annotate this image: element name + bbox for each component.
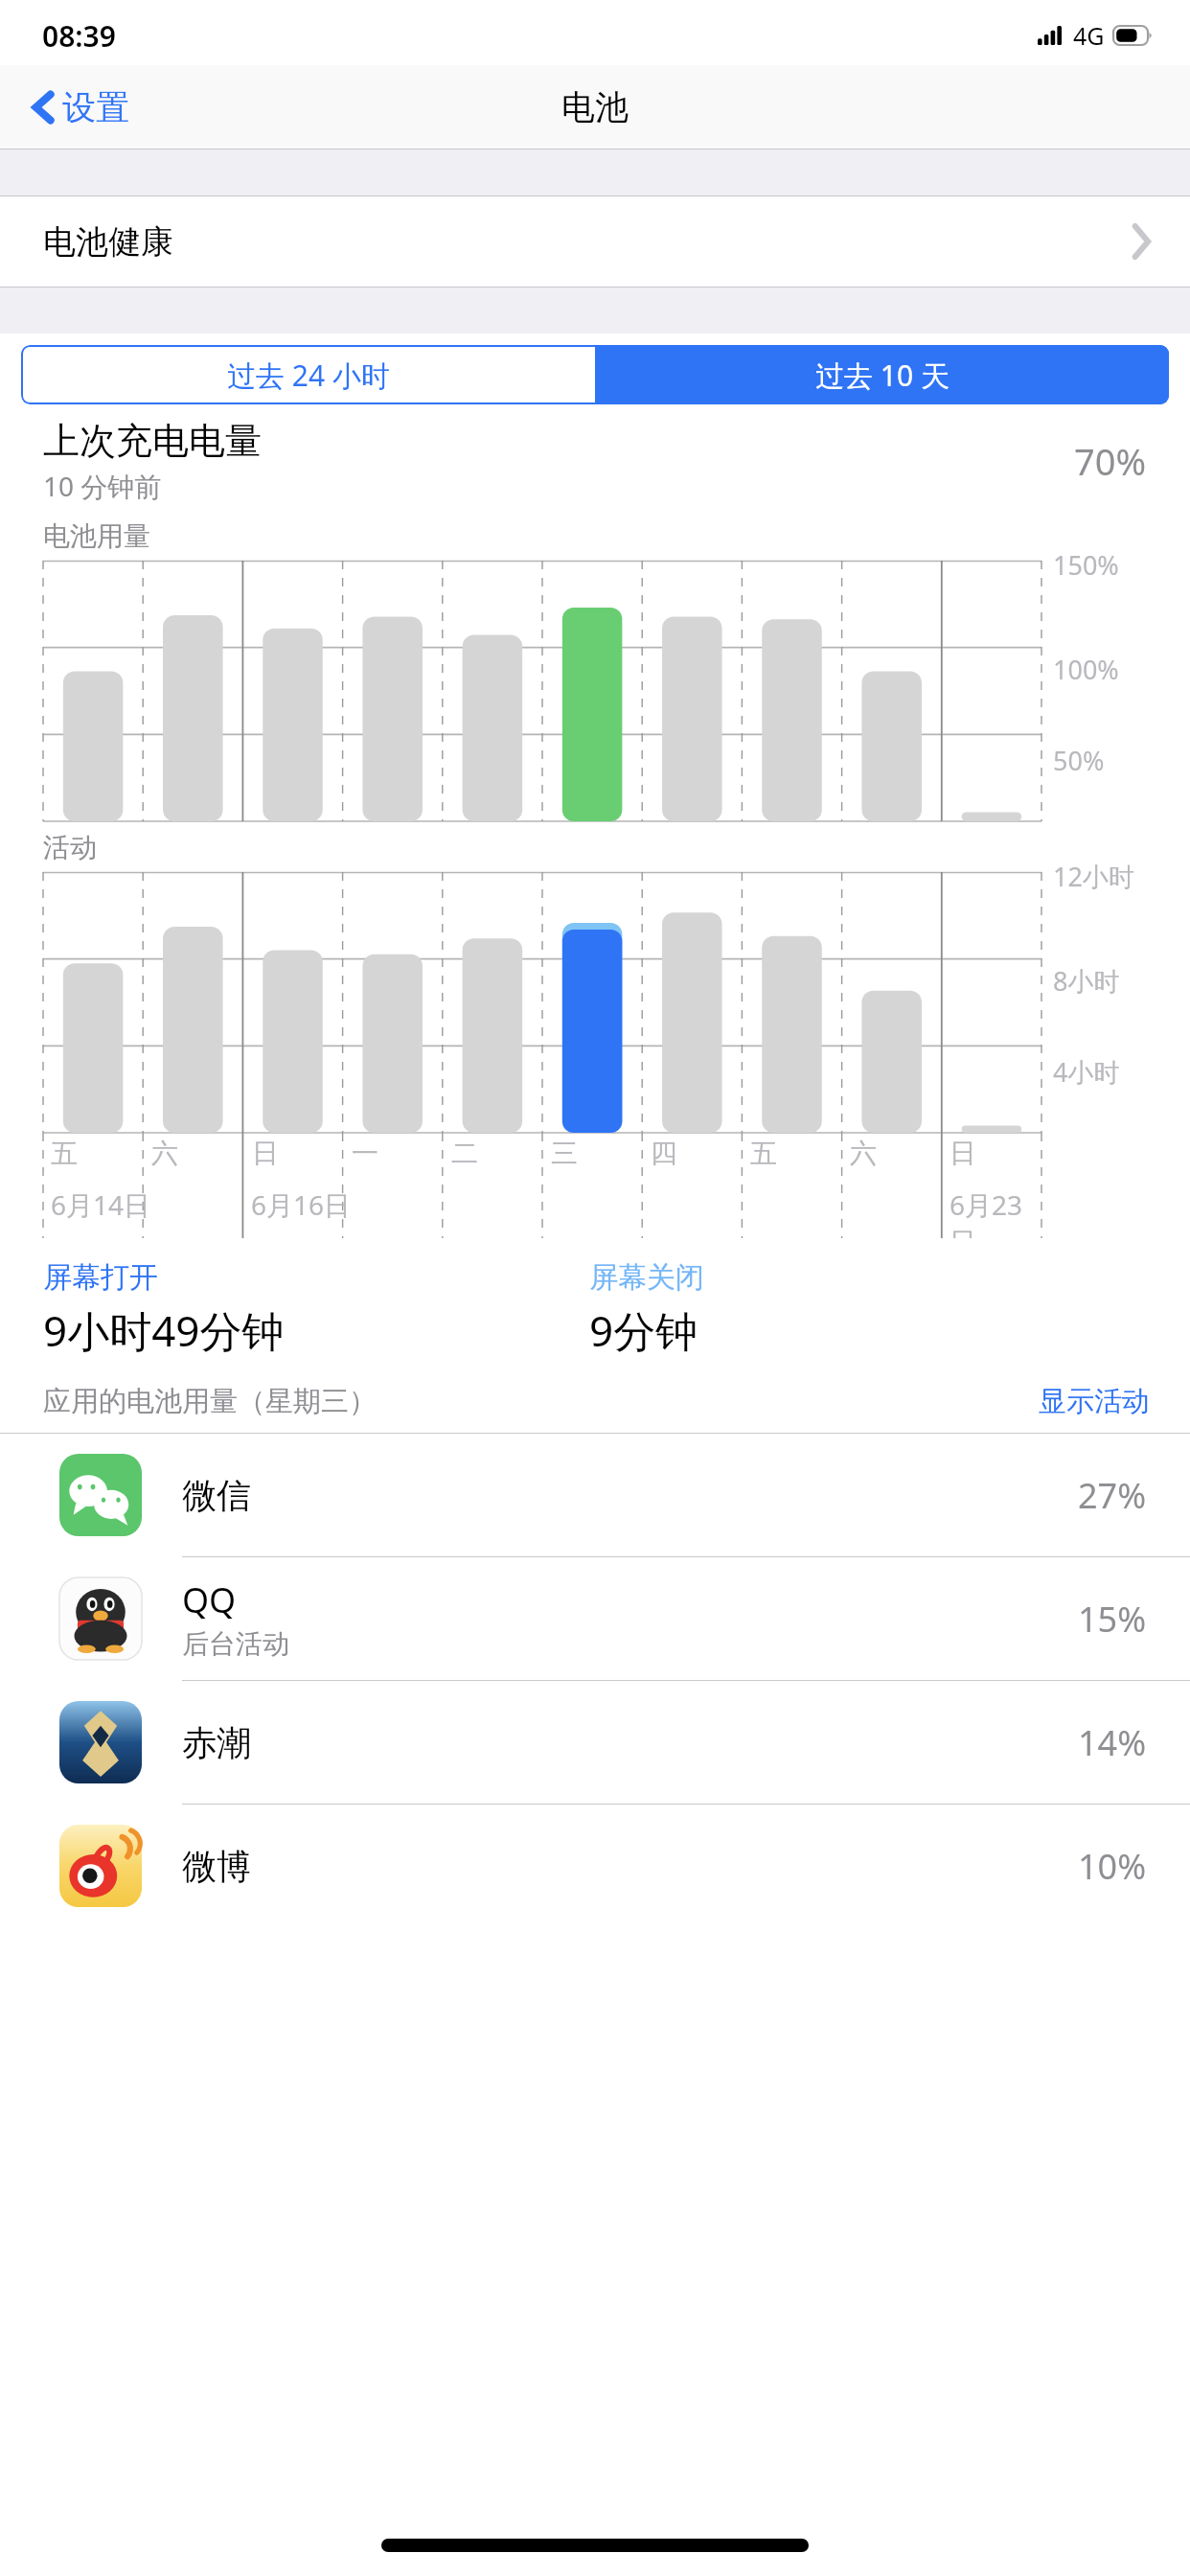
staticText: 三: [551, 1137, 578, 1170]
staticText: 屏幕打开: [43, 1259, 158, 1296]
staticText: 二: [451, 1137, 478, 1170]
staticText: 10 分钟前: [43, 468, 162, 504]
staticText: 六: [151, 1137, 178, 1170]
staticText: 电池健康: [43, 221, 173, 263]
staticText: 后台活动: [182, 1627, 289, 1661]
staticText: 6月14日: [51, 1186, 151, 1223]
staticText: 9分钟: [589, 1301, 698, 1359]
staticText: 过去 10 天: [815, 356, 950, 395]
staticText: 日: [950, 1137, 976, 1170]
staticText: 50%: [1053, 743, 1105, 778]
staticText: 12小时: [1053, 859, 1134, 894]
button[interactable]: 电池健康: [0, 195, 1190, 287]
staticText: 五: [51, 1137, 78, 1170]
staticText: 过去 24 小时: [227, 356, 390, 395]
staticText: 6月23日: [950, 1186, 1041, 1238]
staticText: 10%: [1078, 1843, 1147, 1890]
staticText: 六: [850, 1137, 877, 1170]
staticText: 08:39: [42, 16, 116, 56]
staticText: 微信: [182, 1474, 251, 1517]
button[interactable]: 微信: [0, 1434, 1190, 1556]
staticText: 五: [750, 1137, 777, 1170]
staticText: 150%: [1053, 547, 1119, 583]
staticText: 70%: [1074, 436, 1147, 486]
staticText: 屏幕关闭: [589, 1259, 704, 1296]
button[interactable]: QQ: [0, 1557, 1190, 1680]
staticText: 4小时: [1053, 1054, 1120, 1090]
staticText: 设置: [62, 86, 129, 128]
button[interactable]: 微博: [0, 1805, 1190, 1927]
staticText: 日: [252, 1137, 279, 1170]
staticText: 27%: [1078, 1472, 1147, 1519]
staticText: 微博: [182, 1845, 251, 1888]
staticText: 4G: [1073, 19, 1105, 52]
staticText: QQ: [182, 1576, 237, 1623]
staticText: 显示活动: [1039, 1384, 1150, 1419]
staticText: 6月16日: [251, 1186, 352, 1223]
button[interactable]: 过去 24 小时: [21, 345, 595, 404]
staticText: 15%: [1078, 1596, 1147, 1643]
staticText: 活动: [43, 831, 97, 864]
staticText: 电池用量: [43, 519, 150, 553]
button[interactable]: 显示活动: [1039, 1384, 1150, 1419]
staticText: 8小时: [1053, 963, 1120, 999]
staticText: 四: [651, 1137, 677, 1170]
staticText: 一: [352, 1137, 378, 1170]
staticText: 电池: [561, 86, 629, 128]
staticText: 100%: [1053, 652, 1119, 687]
button[interactable]: 过去 10 天: [595, 345, 1169, 404]
staticText: 14%: [1078, 1719, 1147, 1766]
button[interactable]: 赤潮: [0, 1681, 1190, 1804]
staticText: 应用的电池用量（星期三）: [43, 1384, 1039, 1419]
staticText: 9小时49分钟: [43, 1301, 285, 1359]
staticText: 赤潮: [182, 1721, 251, 1764]
staticText: 上次充电电量: [43, 418, 262, 464]
button[interactable]: 返回 设置: [27, 80, 135, 134]
